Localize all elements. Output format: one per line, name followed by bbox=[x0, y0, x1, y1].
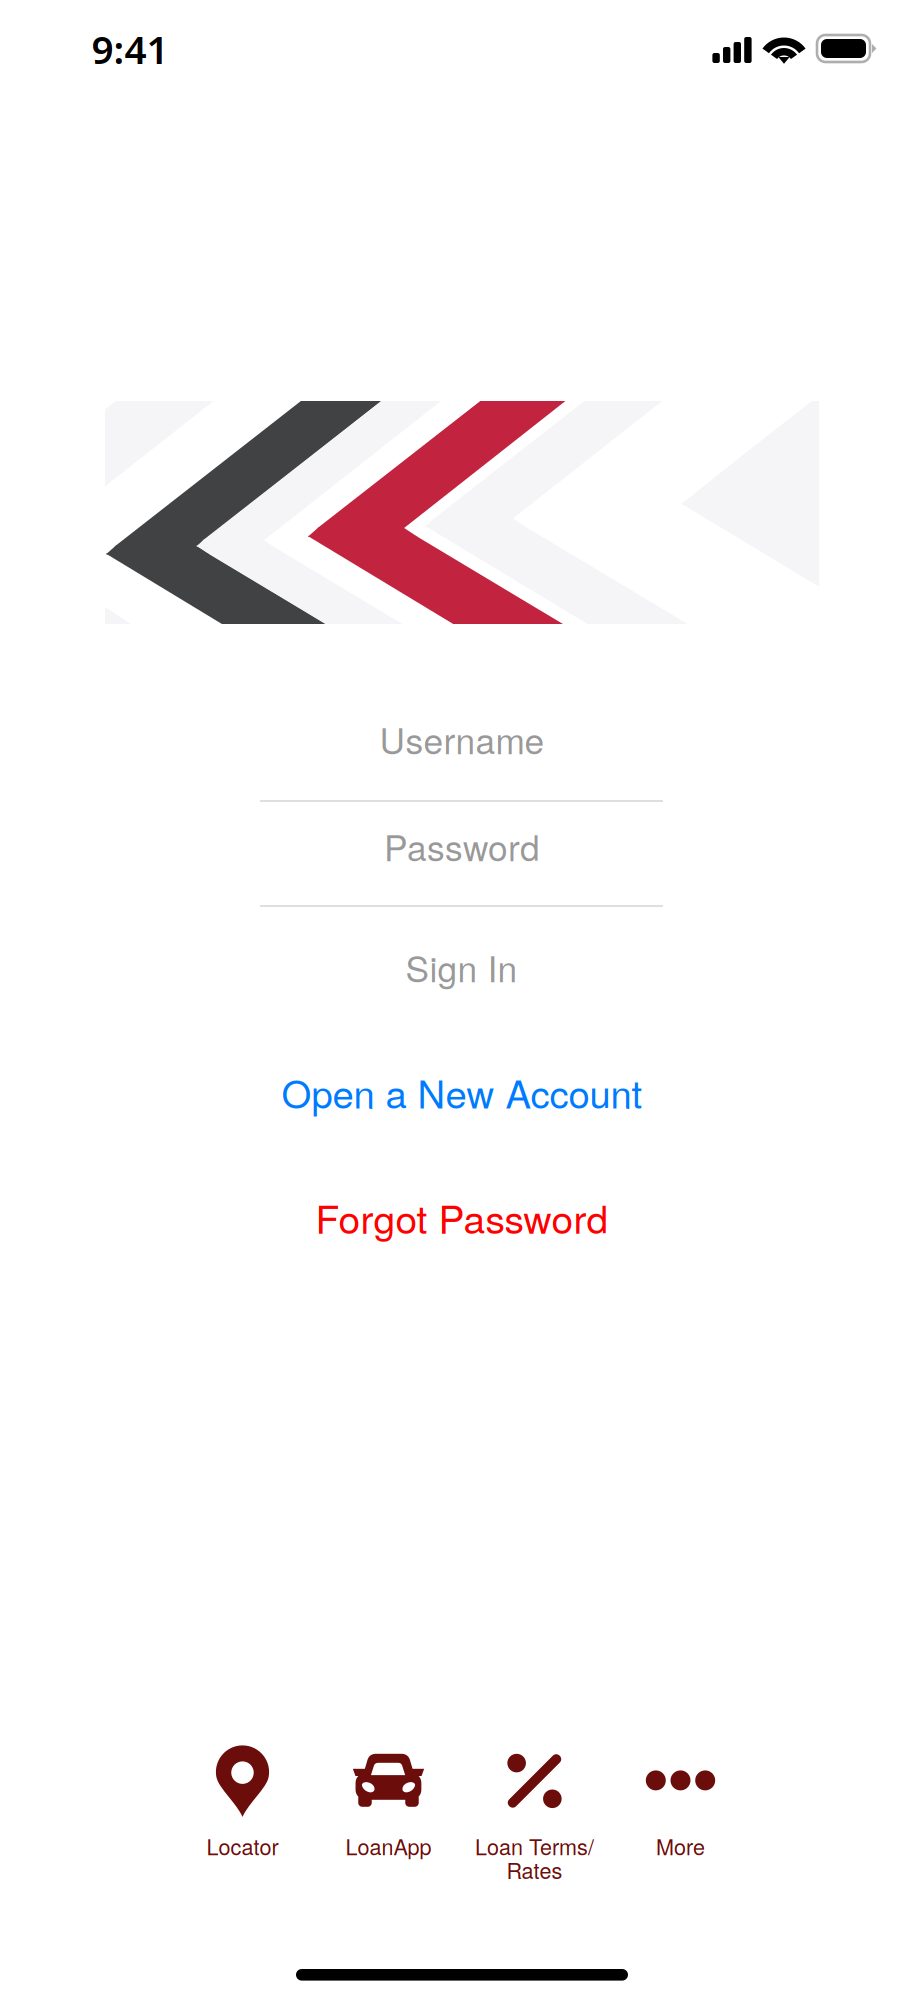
staticText: More bbox=[656, 1830, 705, 1861]
staticText: Sign In bbox=[405, 942, 517, 992]
button[interactable]: Open a New Account bbox=[0, 1060, 924, 1124]
button[interactable]: Loan Terms/ bbox=[461, 1745, 607, 1891]
button[interactable]: Locator bbox=[169, 1745, 315, 1891]
staticText: Forgot Password bbox=[315, 1189, 608, 1245]
staticText: 9:41 bbox=[91, 23, 168, 75]
staticText: Locator bbox=[206, 1830, 278, 1861]
button[interactable]: More bbox=[607, 1745, 753, 1891]
button[interactable]: LoanApp bbox=[315, 1745, 461, 1891]
button[interactable]: Forgot Password bbox=[0, 1185, 924, 1249]
staticText: Username bbox=[379, 714, 544, 764]
staticText: LoanApp bbox=[345, 1830, 431, 1861]
button[interactable]: Sign In bbox=[260, 937, 663, 997]
staticText: Open a New Account bbox=[281, 1065, 642, 1119]
staticText: Loan Terms/ bbox=[475, 1830, 594, 1861]
staticText: Password bbox=[384, 821, 540, 871]
staticText: Rates bbox=[506, 1854, 562, 1885]
